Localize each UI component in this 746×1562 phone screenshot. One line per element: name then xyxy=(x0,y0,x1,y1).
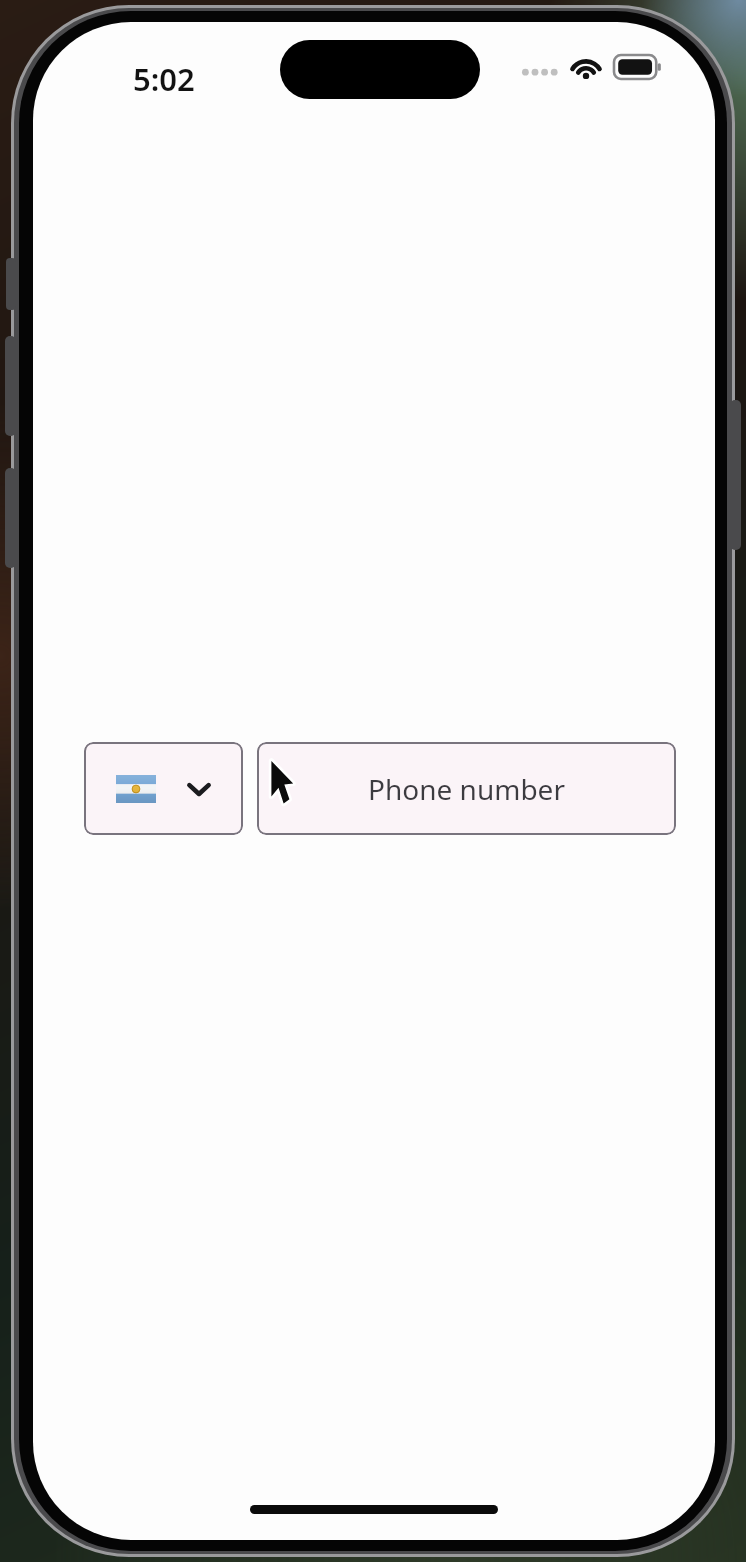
staticText: 5:02 xyxy=(133,58,195,100)
staticText: Phone number xyxy=(368,770,565,808)
button[interactable]: Volume down xyxy=(5,468,16,568)
button[interactable]: Select country calling code, Argentina xyxy=(84,742,243,835)
button[interactable]: Ring silent switch xyxy=(6,258,16,310)
button[interactable]: Volume up xyxy=(5,336,16,436)
button[interactable]: Power xyxy=(730,400,741,550)
button[interactable]: Phone number xyxy=(257,742,676,835)
